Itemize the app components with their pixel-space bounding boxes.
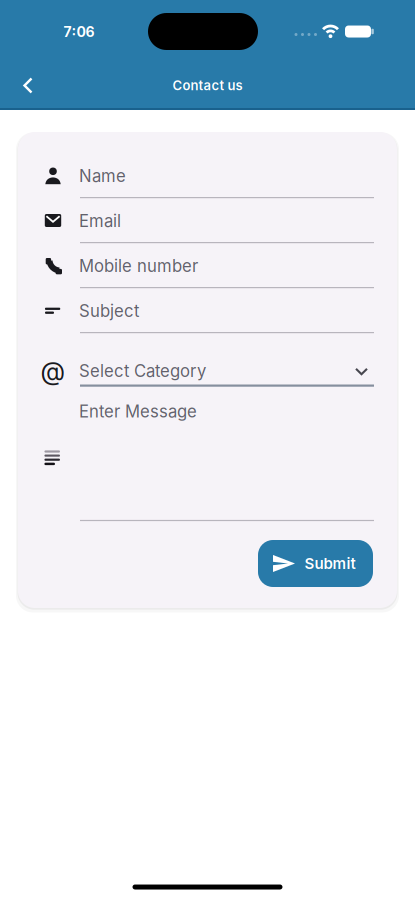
staticText: Enter Message: [79, 401, 197, 422]
staticText: Subject: [79, 301, 139, 321]
staticText: 7:06: [63, 23, 94, 40]
staticText: Name: [79, 166, 126, 186]
staticText: Contact us: [172, 78, 242, 93]
staticText: Select Category: [79, 361, 206, 381]
staticText: Mobile number: [79, 256, 198, 276]
staticText: Submit: [304, 554, 355, 573]
staticText: Email: [79, 211, 121, 231]
staticText: @: [40, 356, 65, 386]
